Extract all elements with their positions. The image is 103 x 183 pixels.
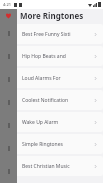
button[interactable]: Favorites panel: [0, 9, 17, 183]
button[interactable]: Loud Alarms For: [0, 68, 103, 88]
staticText: More Ringtones: [20, 10, 84, 21]
staticText: Best Christian Music: [22, 163, 94, 170]
button[interactable]: Simple Ringtones: [0, 134, 103, 154]
staticText: Loud Alarms For: [22, 75, 94, 82]
button[interactable]: Coolest Notification: [0, 90, 103, 110]
staticText: Coolest Notification: [22, 97, 94, 104]
button[interactable]: Best Free Funny Sixti: [0, 24, 103, 44]
staticText: Hip Hop Beats and: [22, 53, 94, 60]
staticText: Best Free Funny Sixti: [22, 31, 94, 38]
staticText: Wake Up Alarm: [22, 119, 94, 126]
button[interactable]: Best Christian Music: [0, 156, 103, 176]
button[interactable]: Wake Up Alarm: [0, 112, 103, 132]
button[interactable]: Hip Hop Beats and: [0, 46, 103, 66]
staticText: 4:21: [3, 2, 11, 7]
staticText: Simple Ringtones: [22, 141, 94, 148]
